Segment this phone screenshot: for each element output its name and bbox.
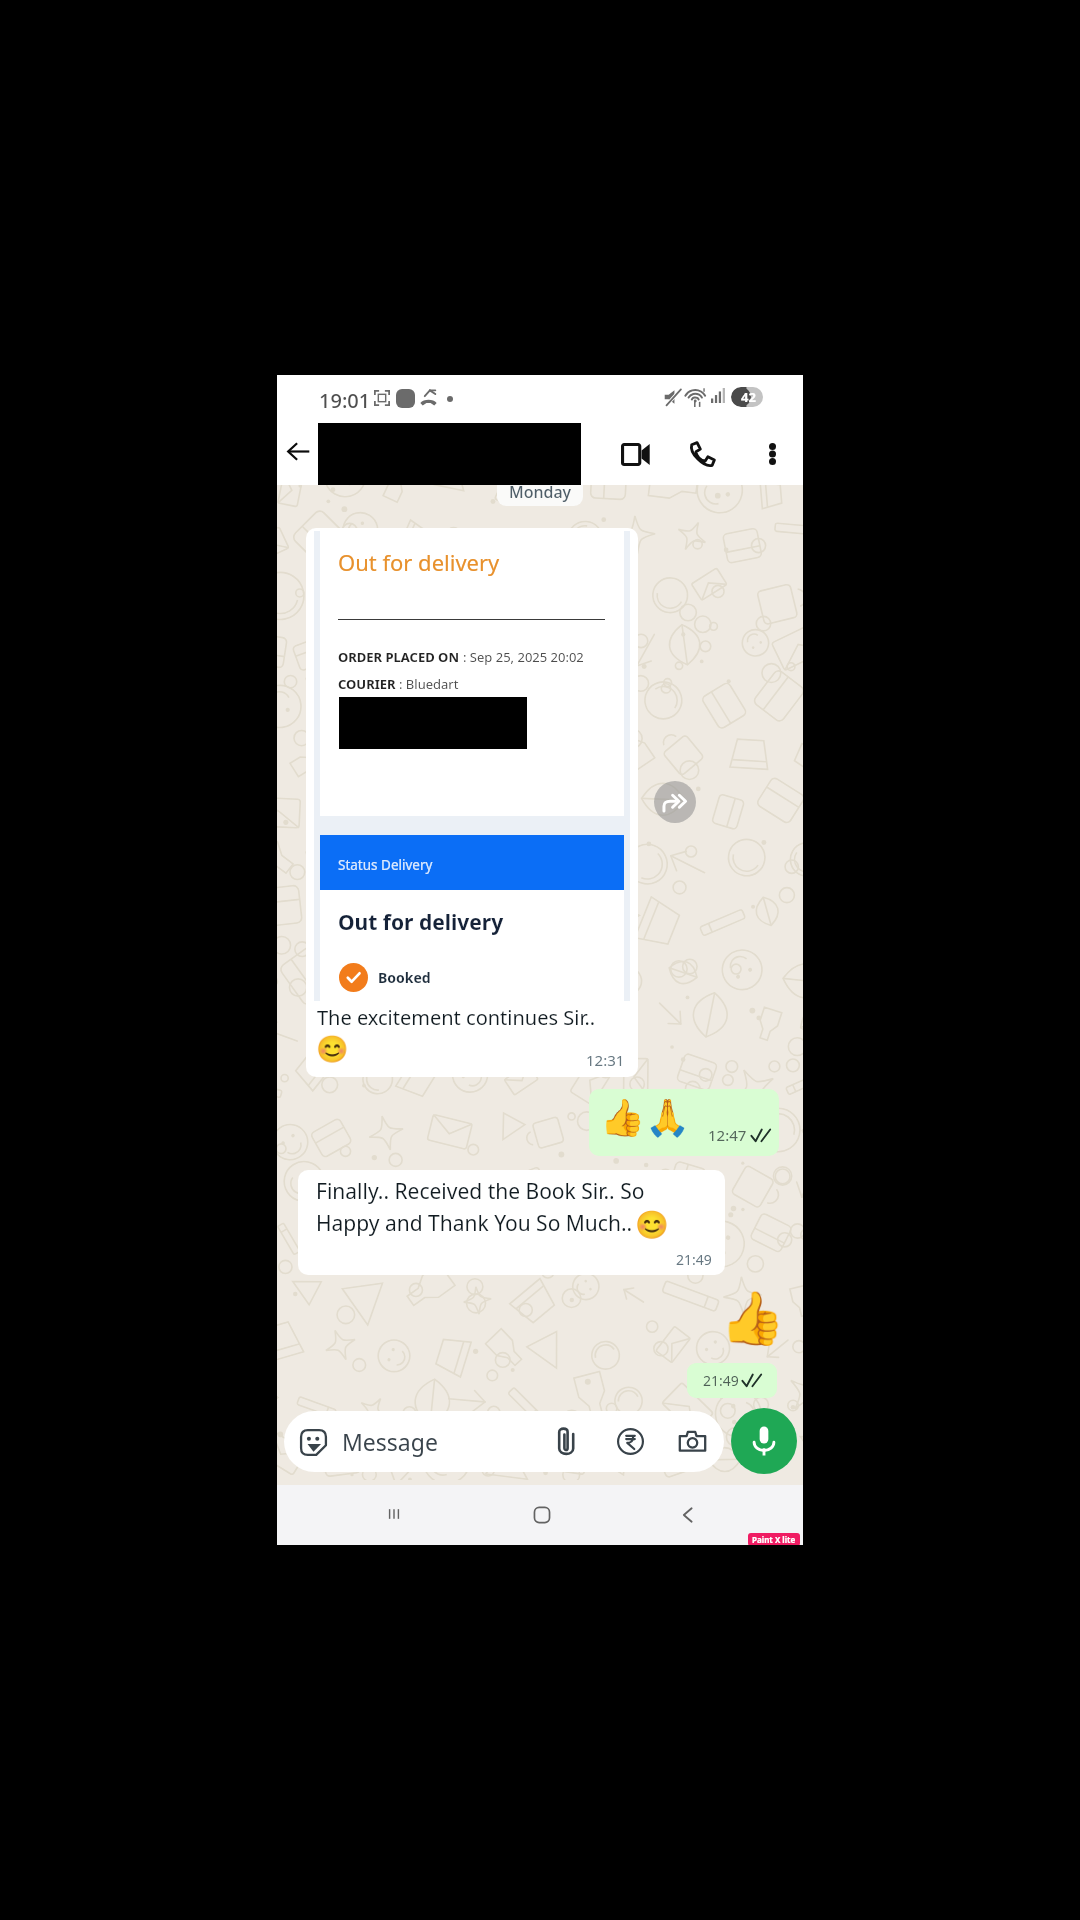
staticText: 😊	[635, 1209, 669, 1241]
button[interactable]: Forward	[654, 781, 696, 823]
button[interactable]: Stickers	[295, 1419, 332, 1465]
staticText: 👍🙏	[600, 1097, 690, 1139]
button[interactable]: Voice message	[731, 1408, 797, 1474]
button[interactable]: Back	[658, 1485, 718, 1545]
staticText: 12:31	[586, 1050, 625, 1070]
staticText: Out for delivery	[338, 547, 500, 577]
button[interactable]: Back	[280, 420, 316, 482]
button[interactable]: More options	[750, 431, 794, 477]
button[interactable]: 21:49	[687, 1363, 777, 1398]
staticText: ORDER PLACED ON	[338, 648, 463, 666]
button[interactable]: Payment	[613, 1419, 647, 1465]
button[interactable]: Attach	[549, 1419, 583, 1465]
staticText: 👍	[720, 1288, 785, 1349]
staticText: 12:47	[708, 1125, 747, 1145]
button[interactable]: Monday	[497, 472, 583, 506]
staticText: 😊	[316, 1034, 349, 1065]
staticText: 42	[741, 388, 756, 406]
button[interactable]: 👍🙏	[589, 1089, 779, 1156]
button[interactable]: Finally.. Received the Book Sir.. So	[298, 1170, 725, 1275]
button[interactable]: Home	[512, 1485, 572, 1545]
staticText: Happy and Thank You So Much..	[316, 1209, 633, 1238]
button[interactable]: Camera	[675, 1419, 709, 1465]
button[interactable]: Voice call	[678, 431, 726, 477]
staticText: Finally.. Received the Book Sir.. So	[316, 1177, 645, 1206]
button[interactable]: Recents	[364, 1485, 424, 1545]
staticText: Out for delivery	[338, 908, 504, 937]
staticText: Booked	[378, 968, 431, 987]
button[interactable]: Stickers	[284, 1411, 724, 1472]
staticText: Paint X lite	[752, 1534, 796, 1545]
staticText: 19:01	[319, 387, 371, 414]
staticText: 21:49	[676, 1250, 712, 1269]
staticText: Monday	[509, 481, 572, 503]
button[interactable]: Out for delivery	[306, 528, 638, 1077]
staticText: : Sep 25, 2025 20:02	[463, 648, 584, 666]
staticText: The excitement continues Sir..	[317, 1004, 596, 1031]
button[interactable]: Video call	[611, 431, 659, 477]
staticText: Message	[342, 1426, 438, 1457]
staticText: 21:49	[703, 1371, 739, 1390]
staticText: COURIER	[338, 675, 399, 693]
staticText: : Bluedart	[399, 675, 459, 693]
staticText: Status Delivery	[338, 856, 433, 874]
